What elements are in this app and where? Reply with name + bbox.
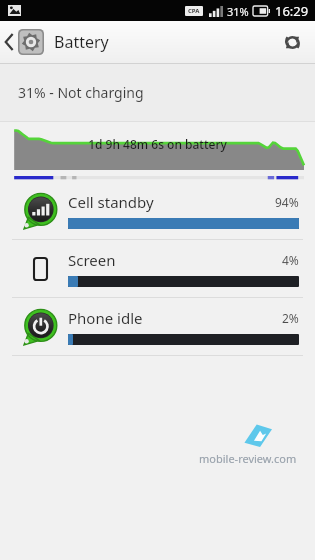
staticText: 94% [275, 194, 299, 210]
staticText: 31% - Not charging [18, 83, 144, 102]
staticText: 4% [282, 252, 299, 268]
staticText: 31% [227, 4, 249, 19]
staticText: Battery [54, 31, 109, 53]
button[interactable]: Battery [0, 25, 117, 59]
staticText: 2% [282, 310, 299, 326]
staticText: Cell standby [68, 192, 154, 212]
button[interactable]: Phone idle [0, 298, 315, 355]
staticText: 1d 9h 48m 6s on battery [88, 136, 227, 152]
staticText: Phone idle [68, 308, 143, 328]
button[interactable]: Cell standby [0, 182, 315, 239]
staticText: CPA [188, 7, 200, 15]
button[interactable]: Screen [0, 240, 315, 297]
button[interactable]: Refresh [275, 25, 309, 59]
staticText: 16:29 [275, 2, 309, 20]
staticText: mobile-review.com [199, 451, 297, 466]
staticText: Screen [68, 250, 116, 270]
